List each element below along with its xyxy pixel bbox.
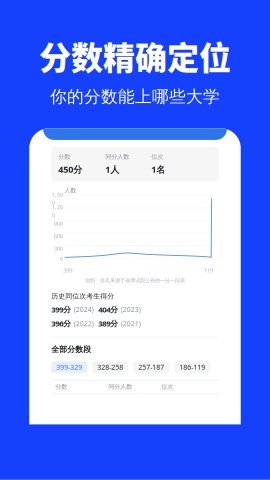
staticText: (2022) <box>74 319 94 328</box>
button[interactable]: 328-258 <box>92 361 128 373</box>
staticText: 位次 <box>151 153 163 161</box>
staticText: 1人 <box>105 163 119 175</box>
staticText: 900 <box>54 219 63 227</box>
staticText: 399 <box>63 266 72 274</box>
staticText: 同分人数 <box>108 383 132 391</box>
staticText: 你的分数能上哪些大学 <box>50 86 220 107</box>
staticText: 人数 <box>64 186 76 194</box>
staticText: 257-187 <box>138 362 164 372</box>
staticText: 399-329 <box>56 362 82 372</box>
staticText: (2021) <box>121 319 141 328</box>
staticText: 186-119 <box>179 362 205 372</box>
staticText: 328-258 <box>97 362 123 372</box>
staticText: 600 <box>54 232 63 240</box>
staticText: 全部分数段 <box>51 344 91 354</box>
staticText: 1,500 <box>52 190 63 206</box>
staticText: 450分 <box>58 163 82 175</box>
staticText: 300 <box>54 244 63 252</box>
staticText: (2023) <box>121 305 141 314</box>
staticText: 位次 <box>161 383 173 391</box>
staticText: 399分 <box>51 304 71 315</box>
staticText: 389分 <box>98 318 118 329</box>
button[interactable]: 257-187 <box>133 361 169 373</box>
staticText: 分数精确定位 <box>39 33 231 79</box>
staticText: 同分人数 <box>105 153 129 161</box>
staticText: 1名 <box>151 163 165 175</box>
staticText: 119 <box>204 266 213 274</box>
staticText: (2024) <box>74 305 94 314</box>
staticText: 分数 <box>55 383 67 391</box>
staticText: 分数 <box>58 153 70 161</box>
button[interactable]: 399-329 <box>51 361 87 373</box>
staticText: 1,200 <box>52 203 63 219</box>
button[interactable]: 186-119 <box>174 361 210 373</box>
staticText: 396分 <box>51 318 71 329</box>
button[interactable]: 返回 <box>43 82 66 103</box>
staticText: 404分 <box>98 304 118 315</box>
staticText: 历史同位次考生得分 <box>51 292 114 301</box>
staticText: 说明：排名来源于省考试院公布的一分一段表 <box>85 277 185 284</box>
staticText: 0 <box>60 255 63 263</box>
